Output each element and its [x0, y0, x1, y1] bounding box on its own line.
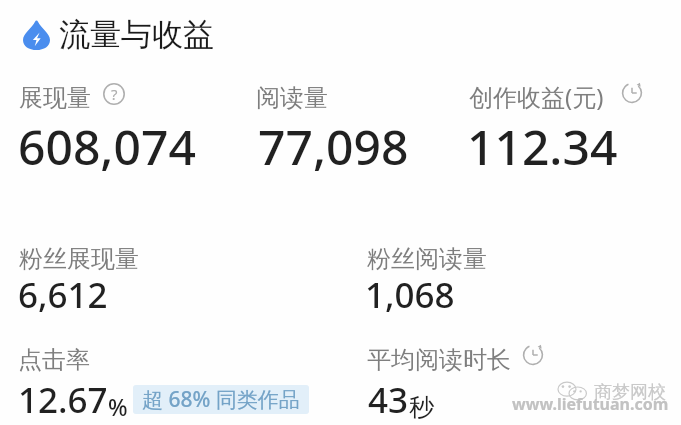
- staticText: 77,098: [258, 114, 409, 179]
- button[interactable]: 阅读时长历史: [522, 344, 544, 366]
- staticText: 秒: [409, 392, 434, 423]
- button[interactable]: 创作收益(元): [463, 76, 663, 172]
- button[interactable]: 粉丝阅读量: [360, 238, 660, 318]
- staticText: 粉丝阅读量: [367, 244, 487, 274]
- button[interactable]: 收益历史: [621, 82, 643, 104]
- button[interactable]: 点击率: [14, 339, 354, 421]
- staticText: 商梦网校: [594, 381, 666, 404]
- staticText: 流量与收益: [59, 15, 214, 54]
- staticText: 1,068: [365, 271, 455, 319]
- staticText: www.liefutuan.com: [512, 393, 669, 415]
- staticText: 平均阅读时长: [367, 345, 511, 375]
- staticText: 43: [368, 376, 409, 424]
- staticText: 12.67: [18, 376, 108, 424]
- staticText: %: [108, 391, 128, 422]
- staticText: 展现量: [19, 83, 91, 113]
- staticText: 创作收益(元): [469, 80, 604, 113]
- button[interactable]: 流量与收益: [21, 13, 214, 55]
- button[interactable]: 展现量: [14, 76, 244, 172]
- button[interactable]: 阅读量: [252, 76, 452, 172]
- staticText: 608,074: [18, 114, 196, 179]
- staticText: 超 68% 同类作品: [142, 385, 300, 414]
- button[interactable]: 超 68% 同类作品: [133, 385, 309, 414]
- staticText: 112.34: [467, 114, 618, 179]
- staticText: 点击率: [18, 345, 90, 375]
- button[interactable]: 粉丝展现量: [14, 238, 354, 318]
- staticText: 粉丝展现量: [19, 244, 139, 274]
- button[interactable]: 平均阅读时长: [360, 339, 660, 421]
- staticText: 6,612: [18, 271, 108, 319]
- button[interactable]: 展现量说明: [103, 83, 125, 105]
- staticText: 阅读量: [256, 83, 328, 113]
- staticText: ?: [111, 84, 118, 104]
